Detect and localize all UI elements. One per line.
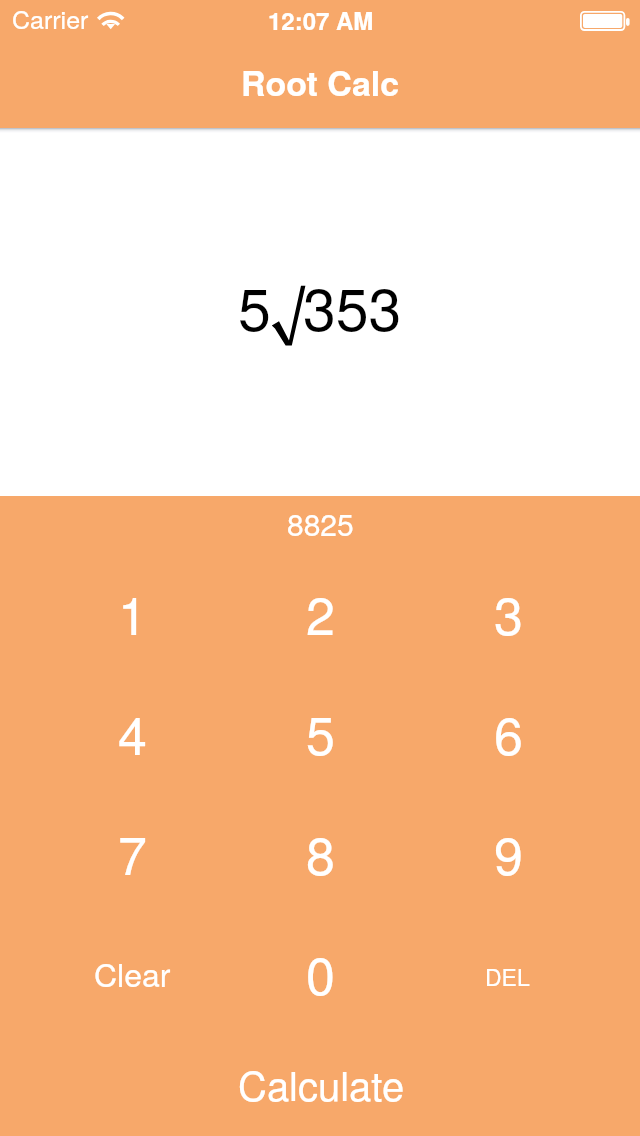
- button[interactable]: 1: [38, 572, 226, 652]
- button[interactable]: Clear: [38, 933, 226, 1013]
- staticText: 9: [494, 815, 523, 889]
- other: Battery full: [580, 11, 630, 32]
- button[interactable]: 7: [38, 812, 226, 892]
- staticText: 8825: [287, 502, 354, 538]
- staticText: Carrier: [12, 0, 89, 36]
- button[interactable]: 8: [226, 812, 414, 892]
- button[interactable]: 8825: [232, 502, 408, 538]
- staticText: Clear: [94, 950, 171, 996]
- button[interactable]: 4: [38, 692, 226, 772]
- staticText: 5: [306, 695, 335, 769]
- button[interactable]: 6: [414, 692, 602, 772]
- staticText: 0: [306, 935, 335, 1009]
- staticText: Calculate: [238, 1055, 405, 1112]
- staticText: Root Calc: [241, 58, 400, 107]
- staticText: 3: [494, 575, 523, 649]
- button[interactable]: 9: [414, 812, 602, 892]
- button[interactable]: 5: [226, 692, 414, 772]
- staticText: 12:07 AM: [268, 3, 374, 37]
- staticText: DEL: [485, 960, 530, 993]
- button[interactable]: 3: [414, 572, 602, 652]
- button[interactable]: 0: [226, 932, 414, 1012]
- other: Wi-Fi signal: [98, 10, 125, 30]
- staticText: 2: [306, 575, 335, 649]
- staticText: 6: [494, 695, 523, 769]
- button[interactable]: Calculate: [201, 1048, 441, 1118]
- staticText: 1: [118, 575, 147, 649]
- staticText: 8: [306, 815, 335, 889]
- button[interactable]: DEL: [413, 936, 601, 1016]
- staticText: 353: [303, 263, 402, 347]
- button[interactable]: 2: [226, 572, 414, 652]
- staticText: 7: [118, 815, 147, 889]
- staticText: 5: [238, 263, 271, 347]
- staticText: 4: [118, 695, 147, 769]
